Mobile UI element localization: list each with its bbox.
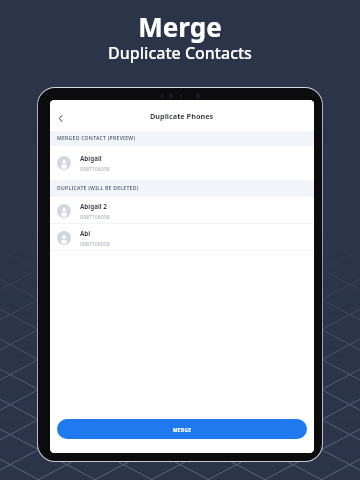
staticText: Merge (138, 9, 222, 44)
button[interactable]: Abigail 2 (50, 197, 314, 224)
button[interactable]: Abi (50, 224, 314, 251)
staticText: Duplicate Phones (150, 111, 214, 121)
staticText: MERGE (173, 427, 192, 434)
staticText: 0987106058 (80, 213, 110, 220)
staticText: Abi (80, 229, 91, 238)
staticText: 0987106058 (80, 165, 110, 172)
button[interactable]: MERGE (57, 419, 307, 439)
staticText: Duplicate Contacts (108, 42, 252, 64)
staticText: 0987106058 (80, 240, 110, 247)
staticText: MERGED CONTACT (PREVIEW) (57, 135, 136, 142)
staticText: Abigail 2 (80, 202, 107, 211)
button[interactable]: Abigail (50, 146, 314, 180)
staticText: DUPLICATE (WILL BE DELETED) (57, 185, 139, 192)
staticText: Abigail (80, 154, 102, 163)
button[interactable]: Back (52, 110, 68, 126)
